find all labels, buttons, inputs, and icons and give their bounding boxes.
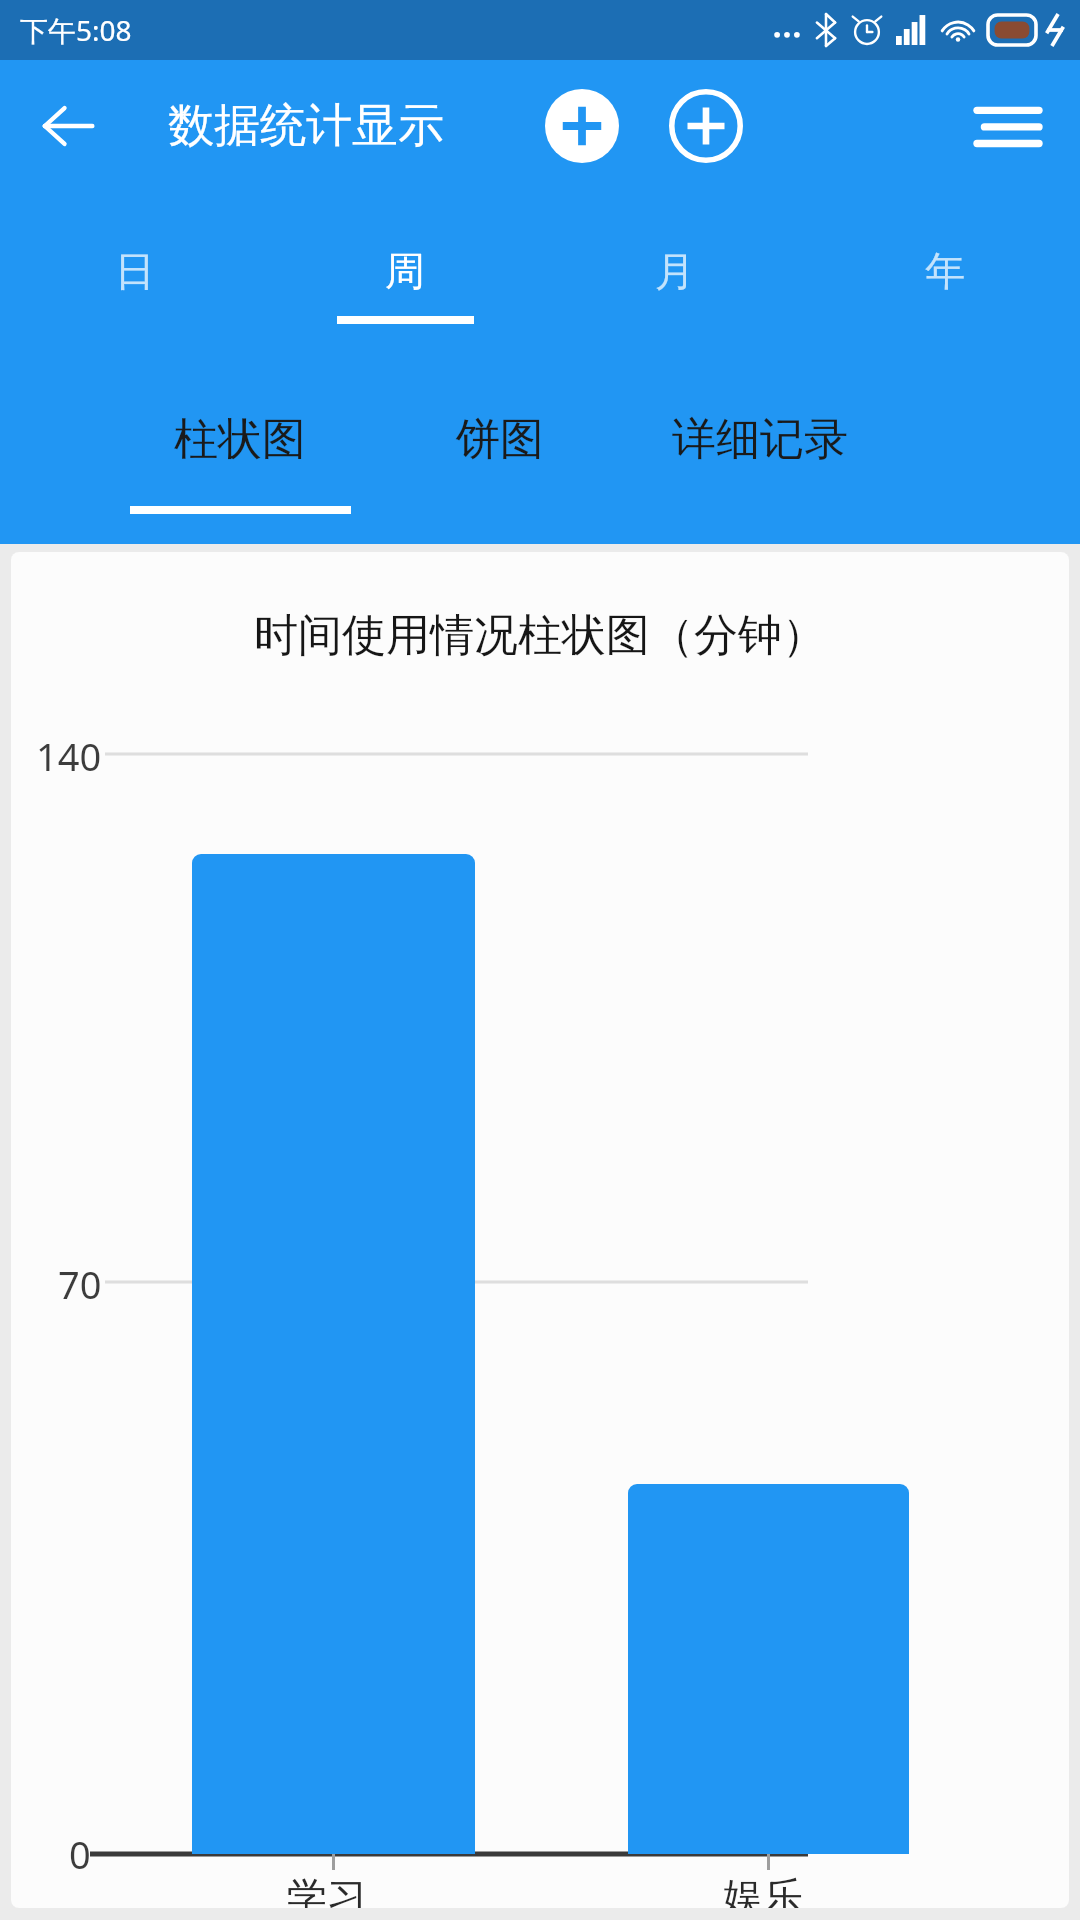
staticText: 饼图 [456, 412, 544, 467]
button[interactable]: 柱状图 [110, 384, 370, 544]
button[interactable]: 详细记录 [630, 384, 890, 544]
staticText: 月 [655, 246, 695, 296]
staticText: 年 [925, 246, 965, 296]
button[interactable]: 月 [540, 192, 810, 384]
staticText: 学习 [287, 1872, 367, 1908]
staticText: 140 [36, 730, 102, 782]
button[interactable]: 饼图 [370, 384, 630, 544]
staticText: 0 [69, 1828, 91, 1880]
staticText: 数据统计显示 [168, 97, 444, 155]
button[interactable]: 年 [810, 192, 1080, 384]
staticText: 娱乐 [723, 1872, 803, 1908]
staticText: 70 [58, 1258, 102, 1310]
button[interactable]: 日 [0, 192, 270, 384]
staticText: 柱状图 [174, 412, 306, 467]
staticText: 时间使用情况柱状图（分钟） [254, 608, 826, 663]
button[interactable]: 新建 [654, 74, 758, 178]
staticText: 日 [115, 246, 155, 296]
button[interactable]: 添加 [530, 74, 634, 178]
staticText: 详细记录 [672, 412, 848, 467]
staticText: 下午5:08 [20, 11, 132, 49]
button[interactable]: 周 [270, 192, 540, 384]
button[interactable]: 菜单 [960, 78, 1056, 174]
staticText: 周 [385, 246, 425, 296]
button[interactable]: 返回 [22, 80, 114, 172]
